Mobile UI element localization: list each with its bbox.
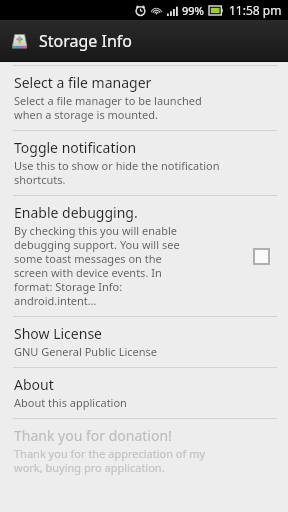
button[interactable]: Thank you for donation! <box>0 419 288 483</box>
staticText: Toggle notification <box>14 138 137 157</box>
staticText: Enable debugging. <box>14 203 138 222</box>
staticText: GNU General Public License <box>14 344 158 359</box>
button[interactable]: Enable debugging. <box>0 196 288 316</box>
staticText: By checking this you will enable debuggi… <box>14 223 180 308</box>
staticText: Thank you for donation! <box>14 426 172 445</box>
button[interactable]: Toggle notification <box>0 131 288 195</box>
staticText: Use this to show or hide the notificatio… <box>14 158 220 187</box>
staticText: Storage Info <box>39 30 133 52</box>
staticText: Select a file manager to be launched whe… <box>14 93 202 122</box>
staticText: Thank you for the appreciation of my wor… <box>14 446 206 475</box>
button[interactable]: About <box>0 368 288 418</box>
staticText: Select a file manager <box>14 73 152 92</box>
staticText: 11:58 pm <box>229 2 282 18</box>
button[interactable]: Enable debugging checkbox <box>244 239 278 273</box>
staticText: Show License <box>14 324 102 343</box>
staticText: About <box>14 375 54 394</box>
button[interactable]: Select a file manager <box>0 66 288 130</box>
staticText: 99% <box>182 3 204 18</box>
button[interactable]: Show License <box>0 317 288 367</box>
staticText: About this application <box>14 395 127 410</box>
